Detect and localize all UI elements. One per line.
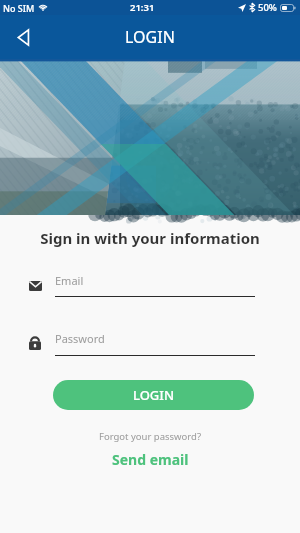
staticText: Forgot your password? — [0, 430, 300, 443]
staticText: Email — [55, 273, 84, 288]
staticText: Password — [55, 331, 105, 346]
staticText: 21:31 — [130, 1, 155, 14]
staticText: Send email — [112, 450, 189, 469]
staticText: 50% — [258, 1, 277, 14]
button[interactable]: Back — [6, 20, 40, 54]
staticText: No SIM — [3, 2, 35, 14]
button[interactable]: Send email — [100, 448, 201, 471]
button[interactable]: LOGIN — [53, 380, 254, 410]
staticText: LOGIN — [133, 386, 175, 404]
staticText: Sign in with your information — [0, 228, 300, 248]
staticText: LOGIN — [125, 26, 175, 48]
